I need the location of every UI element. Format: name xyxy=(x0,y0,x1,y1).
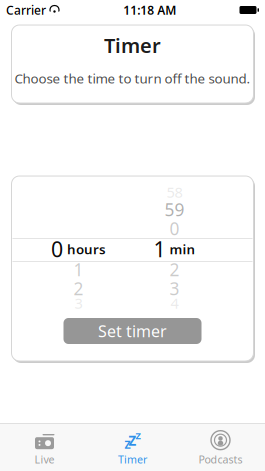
staticText: Z xyxy=(128,432,136,449)
staticText: Live xyxy=(34,452,54,466)
staticText: 3 xyxy=(169,277,179,300)
staticText: 2 xyxy=(73,277,83,300)
staticText: 3 xyxy=(74,293,82,313)
staticText: Choose the time to turn off the sound. xyxy=(14,70,250,87)
button[interactable]: Live xyxy=(0,424,88,471)
staticText: Z xyxy=(135,429,140,442)
staticText: Podcasts xyxy=(198,452,242,466)
staticText: Set timer xyxy=(98,320,167,342)
staticText: 0 xyxy=(51,235,63,263)
staticText: Timer xyxy=(104,32,161,59)
staticText: 1 xyxy=(153,235,165,263)
button[interactable]: Set timer xyxy=(63,318,201,344)
button[interactable]: Podcasts xyxy=(176,424,264,471)
staticText: Timer xyxy=(118,452,147,466)
staticText: 2 xyxy=(169,258,179,281)
staticText: 1 xyxy=(73,258,83,281)
staticText: min xyxy=(169,240,195,258)
staticText: 11:18 AM xyxy=(123,2,176,18)
staticText: 0 xyxy=(169,217,179,240)
staticText: hours xyxy=(67,240,106,258)
staticText: 4 xyxy=(170,293,178,313)
button[interactable]: Z xyxy=(88,424,176,471)
staticText: Carrier xyxy=(6,2,46,18)
staticText: 58 xyxy=(166,182,182,202)
staticText: 59 xyxy=(164,198,184,221)
staticText: Z xyxy=(124,438,130,452)
